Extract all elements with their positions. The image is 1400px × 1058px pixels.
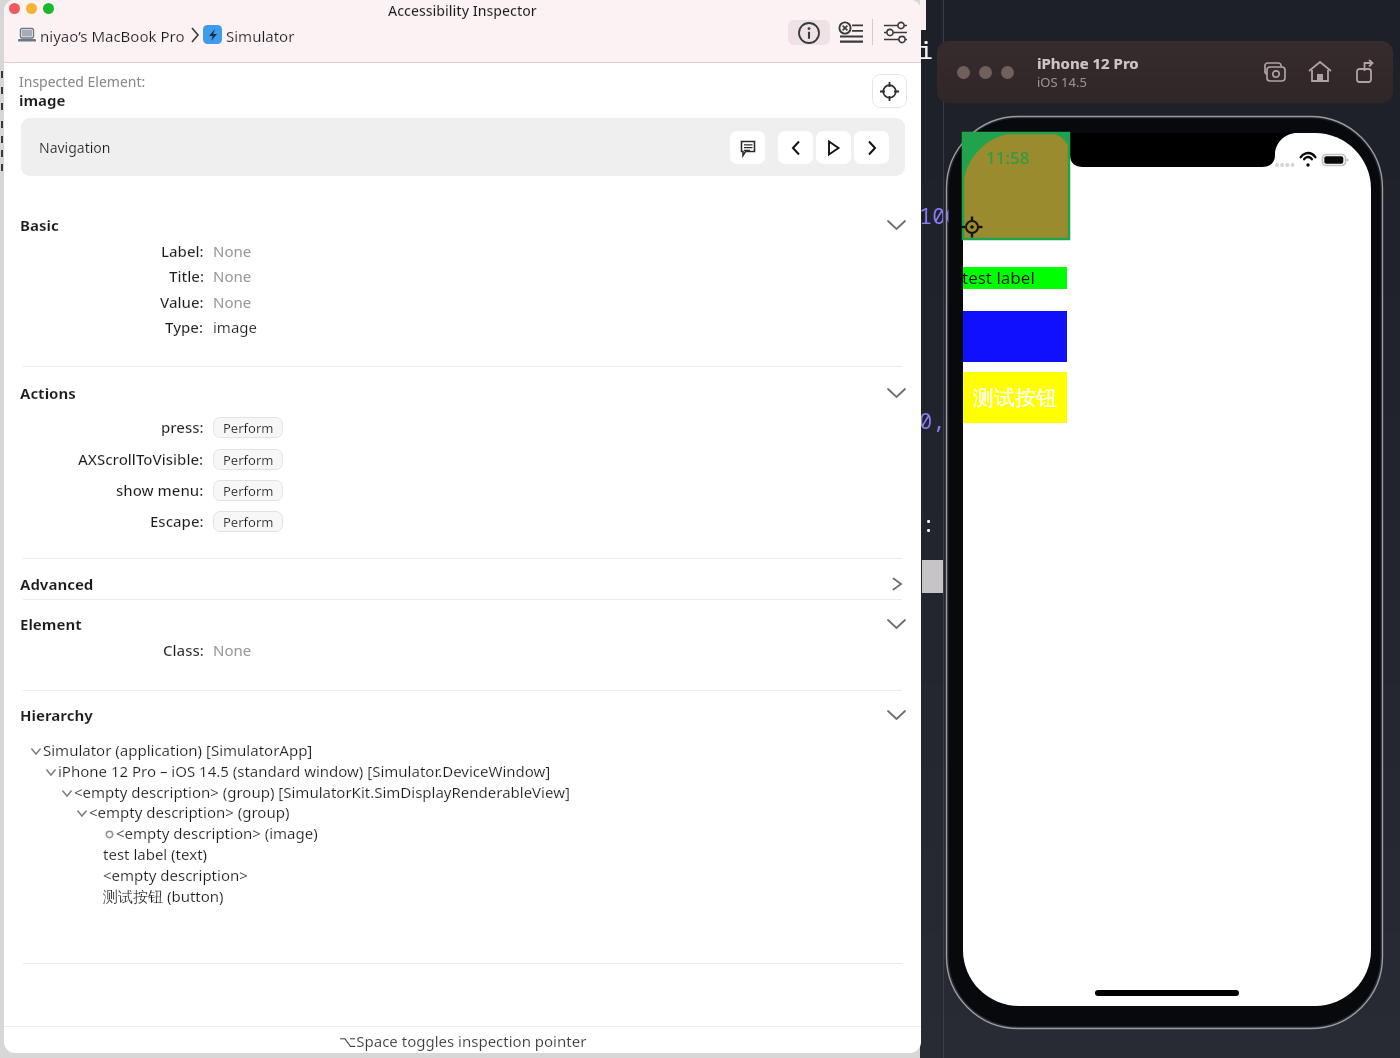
staticText: Value: xyxy=(160,292,204,312)
staticText: None xyxy=(213,292,252,312)
staticText: iPhone 12 Pro – iOS 14.5 (standard windo… xyxy=(58,761,551,781)
staticText: Inspected Element: xyxy=(19,72,146,91)
staticText: Element xyxy=(20,614,82,634)
staticText: press: xyxy=(161,417,204,437)
staticText: Class: xyxy=(163,640,204,660)
button[interactable]: Audit xyxy=(836,19,866,46)
staticText: AXScrollToVisible: xyxy=(78,449,204,469)
button[interactable]: Minimize xyxy=(26,3,37,14)
staticText: 0, xyxy=(919,405,946,435)
button[interactable]: Perform xyxy=(213,511,283,532)
button[interactable]: 测试按钮 (button) xyxy=(4,887,921,913)
staticText: : xyxy=(922,508,936,538)
button[interactable]: Basic xyxy=(4,210,921,240)
staticText: None xyxy=(213,640,252,660)
staticText: <empty description> xyxy=(103,865,248,885)
staticText: Hierarchy xyxy=(20,705,93,725)
button[interactable]: Element xyxy=(4,609,921,639)
button[interactable]: <empty description> xyxy=(4,866,921,892)
button[interactable]: Actions xyxy=(4,378,921,408)
button[interactable]: Speak xyxy=(730,131,765,164)
button[interactable]: Settings xyxy=(880,19,910,46)
staticText: Basic xyxy=(20,215,59,235)
button[interactable]: Play xyxy=(816,131,851,164)
button[interactable]: <empty description> (group) xyxy=(4,803,921,829)
staticText: 测试按钮 xyxy=(973,385,1057,411)
staticText: <empty description> (image) xyxy=(116,823,318,843)
staticText: image xyxy=(19,90,66,110)
staticText: Title: xyxy=(169,266,204,286)
button[interactable]: <empty description> (image) xyxy=(4,824,921,850)
staticText: show menu: xyxy=(116,480,204,500)
staticText: Navigation xyxy=(39,138,111,157)
staticText: 100 xyxy=(919,200,959,230)
button[interactable]: Advanced xyxy=(4,569,921,599)
staticText: Accessibility Inspector xyxy=(388,1,537,20)
button[interactable]: test label (text) xyxy=(4,845,921,871)
button[interactable]: Zoom xyxy=(43,3,54,14)
staticText: None xyxy=(213,266,252,286)
button[interactable]: Share xyxy=(1349,56,1381,88)
staticText: 测试按钮 (button) xyxy=(103,886,224,906)
staticText: Simulator xyxy=(226,26,295,46)
button[interactable]: Previous element xyxy=(778,131,813,164)
staticText: niyao’s MacBook Pro xyxy=(40,26,185,46)
staticText: <empty description> (group) [SimulatorKi… xyxy=(74,782,570,802)
staticText: <empty description> (group) xyxy=(89,802,290,822)
button[interactable]: Minimize xyxy=(979,66,992,79)
staticText: Perform xyxy=(223,482,274,500)
staticText: Escape: xyxy=(150,511,204,531)
button[interactable]: Screenshot xyxy=(1259,56,1291,88)
button[interactable]: Close xyxy=(9,3,20,14)
staticText: None xyxy=(213,241,252,261)
button[interactable]: Perform xyxy=(213,449,283,470)
staticText: Perform xyxy=(223,451,274,469)
button[interactable]: Simulator (application) [SimulatorApp] xyxy=(4,741,921,767)
button[interactable]: iPhone 12 Pro – iOS 14.5 (standard windo… xyxy=(4,762,921,788)
button[interactable]: Next element xyxy=(854,131,889,164)
staticText: Advanced xyxy=(20,574,94,594)
button[interactable]: Perform xyxy=(213,417,283,438)
staticText: test label xyxy=(963,266,1035,289)
staticText: Simulator (application) [SimulatorApp] xyxy=(43,740,313,760)
button[interactable]: Zoom xyxy=(1001,66,1014,79)
staticText: Label: xyxy=(161,241,204,261)
button[interactable]: Inspection info xyxy=(788,20,830,45)
staticText: iOS 14.5 xyxy=(1037,73,1087,91)
button[interactable]: Start inspection xyxy=(872,74,907,108)
staticText: i xyxy=(919,34,933,65)
button[interactable]: Close xyxy=(957,66,970,79)
staticText: image xyxy=(213,317,257,337)
button[interactable]: Hierarchy xyxy=(4,700,921,730)
staticText: Type: xyxy=(165,317,204,337)
staticText: Perform xyxy=(223,513,274,531)
staticText: test label (text) xyxy=(103,844,208,864)
button[interactable]: Home xyxy=(1304,56,1336,88)
staticText: iPhone 12 Pro xyxy=(1037,53,1139,73)
button[interactable]: <empty description> (group) [SimulatorKi… xyxy=(4,783,921,809)
button[interactable]: Perform xyxy=(213,480,283,501)
staticText: Actions xyxy=(20,383,76,403)
staticText: 11:58 xyxy=(986,146,1030,169)
staticText: ⌥Space toggles inspection pointer xyxy=(339,1031,587,1051)
button[interactable]: Navigation xyxy=(21,118,905,176)
staticText: Perform xyxy=(223,419,274,437)
